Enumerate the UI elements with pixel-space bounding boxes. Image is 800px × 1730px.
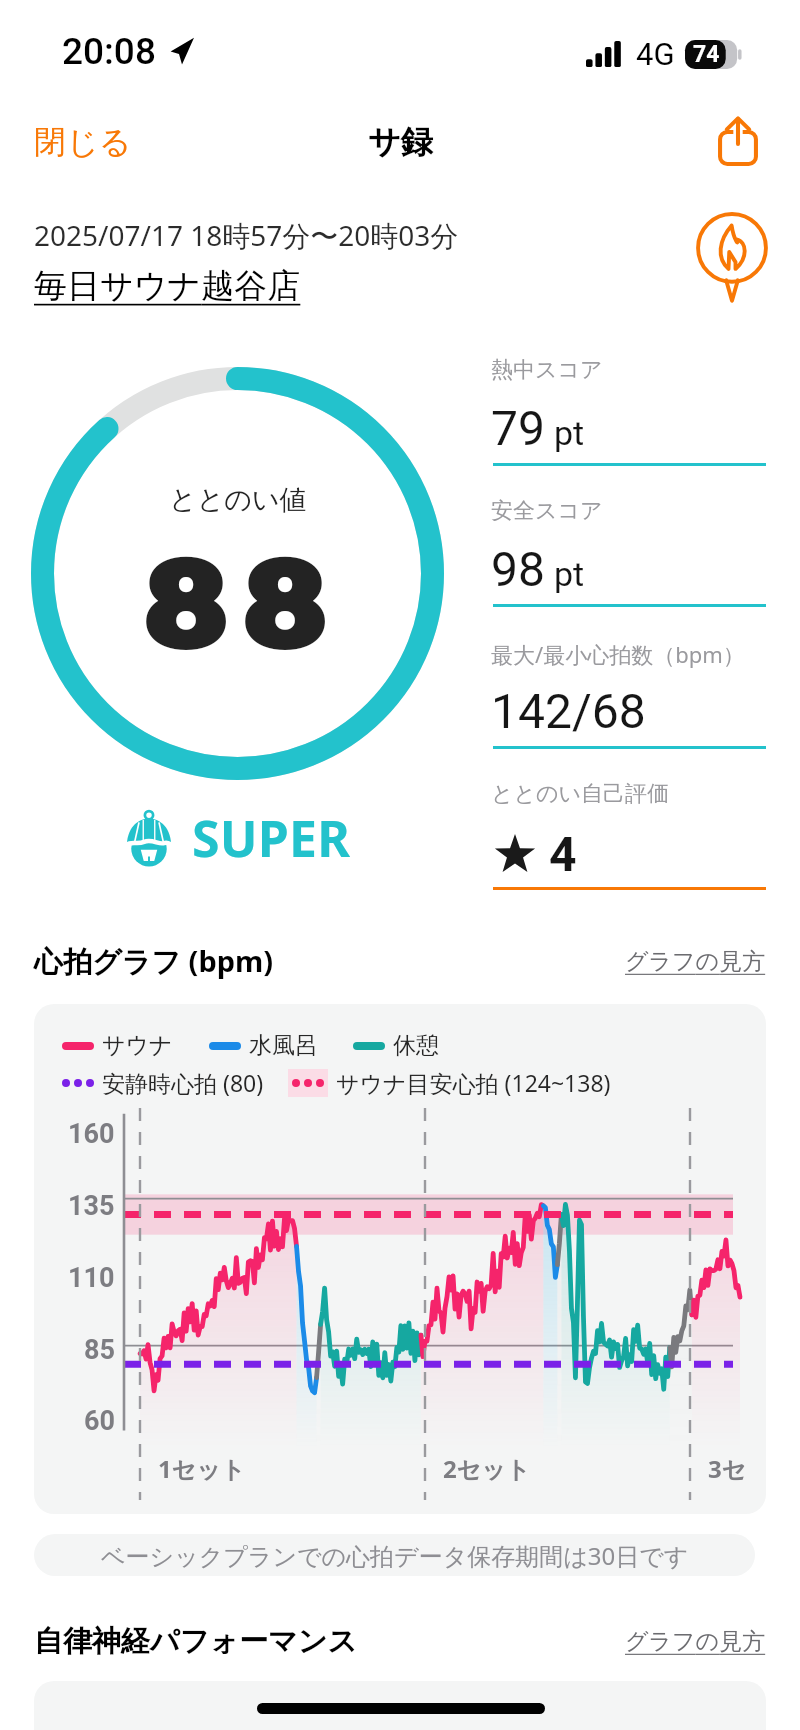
staticText: 3セ: [708, 1452, 747, 1485]
staticText: 心拍グラフ (bpm): [34, 941, 274, 981]
button[interactable]: グラフの見方: [625, 947, 766, 976]
staticText: pt: [554, 413, 585, 453]
staticText: 79: [491, 400, 545, 456]
staticText: 安全スコア: [491, 497, 603, 525]
staticText: 水風呂: [249, 1031, 318, 1060]
staticText: 最大/最小心拍数（bpm）: [491, 639, 745, 669]
staticText: 自律神経パフォーマンス: [34, 1623, 358, 1660]
staticText: 20:08: [62, 30, 156, 73]
staticText: 110: [68, 1262, 115, 1294]
button[interactable]: 閉じる: [14, 112, 152, 172]
staticText: ベーシックプランでの心拍データ保存期間は30日です: [101, 1539, 689, 1572]
staticText: 4G: [636, 36, 675, 72]
staticText: 160: [68, 1118, 115, 1150]
staticText: グラフの見方: [625, 947, 766, 976]
staticText: SUPER: [192, 804, 351, 872]
staticText: グラフの見方: [625, 1627, 766, 1656]
staticText: 4: [549, 826, 577, 882]
staticText: 2セット: [443, 1452, 531, 1485]
staticText: ととのい自己評価: [491, 780, 670, 808]
staticText: 85: [84, 1334, 115, 1366]
staticText: 閉じる: [34, 122, 132, 162]
staticText: 142/68: [491, 683, 646, 739]
staticText: 毎日サウナ越谷店: [34, 265, 301, 307]
staticText: pt: [554, 554, 585, 594]
staticText: 休憩: [393, 1031, 439, 1060]
button[interactable]: Sauna info: [688, 210, 778, 300]
staticText: 安静時心拍 (80): [102, 1067, 264, 1098]
staticText: 74: [693, 41, 720, 68]
staticText: 135: [68, 1190, 115, 1222]
staticText: サウナ: [102, 1031, 173, 1060]
staticText: 2025/07/17 18時57分〜20時03分: [34, 216, 459, 254]
staticText: 1セット: [158, 1452, 246, 1485]
button[interactable]: グラフの見方: [625, 1627, 766, 1656]
staticText: 60: [84, 1405, 115, 1437]
staticText: 88: [143, 525, 342, 680]
staticText: サウナ目安心拍 (124~138): [336, 1067, 611, 1098]
staticText: 熱中スコア: [491, 356, 603, 384]
button[interactable]: Share: [702, 104, 774, 176]
button[interactable]: 毎日サウナ越谷店: [34, 265, 301, 307]
staticText: ととのい値: [169, 483, 307, 517]
staticText: サ録: [368, 122, 433, 162]
staticText: 98: [491, 541, 545, 597]
